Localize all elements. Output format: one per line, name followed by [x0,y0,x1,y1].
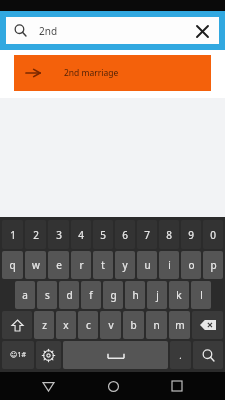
button[interactable]: l [191,281,211,309]
button[interactable]: Back [31,372,65,400]
button[interactable]: 9 [181,220,201,249]
button[interactable]: Space [63,341,168,369]
button[interactable]: 8 [159,220,179,249]
staticText: f [89,288,93,302]
button[interactable]: Home [96,372,130,400]
staticText: y [122,258,128,272]
button[interactable]: 2nd [6,17,219,44]
button[interactable]: g [103,281,123,309]
button[interactable]: f [81,281,101,309]
staticText: i [168,258,171,272]
button[interactable]: 7 [137,220,157,249]
staticText: 9 [188,228,194,242]
staticText: ☺1# [10,350,26,360]
staticText: 3 [56,228,62,242]
button[interactable]: u [137,251,157,279]
staticText: d [66,288,73,302]
button[interactable]: x [56,311,76,339]
staticText: g [110,288,117,302]
staticText: r [79,258,84,272]
button[interactable]: b [123,311,144,339]
staticText: h [132,288,139,302]
staticText: n [153,318,160,332]
button[interactable]: Clear search [193,22,211,40]
button[interactable]: 2nd marriage [14,55,211,91]
staticText: 2nd [39,24,58,38]
button[interactable]: r [71,251,91,279]
button[interactable]: e [48,251,69,279]
button[interactable]: n [146,311,167,339]
staticText: w [32,258,40,272]
staticText: l [200,288,203,302]
button[interactable]: y [115,251,135,279]
button[interactable]: s [37,281,57,309]
staticText: u [144,258,151,272]
button[interactable]: h [125,281,145,309]
staticText: 0 [210,228,216,242]
staticText: 1 [10,228,16,242]
button[interactable]: Settings [36,341,61,369]
button[interactable]: Recent apps [160,372,194,400]
button[interactable]: m [169,311,190,339]
staticText: z [42,318,47,332]
button[interactable]: q [2,251,23,279]
button[interactable]: ☺1# [2,341,34,369]
staticText: 5 [100,228,106,242]
staticText: q [9,258,16,272]
button[interactable]: i [159,251,179,279]
button[interactable]: a [15,281,35,309]
button[interactable]: 2 [25,220,46,249]
staticText: s [45,288,50,302]
button[interactable]: . [170,341,191,369]
button[interactable]: t [93,251,113,279]
button[interactable]: 5 [93,220,113,249]
staticText: x [63,318,69,332]
button[interactable]: 6 [115,220,135,249]
staticText: . [179,349,182,361]
staticText: 6 [122,228,128,242]
staticText: p [210,258,217,272]
button[interactable]: o [181,251,201,279]
button[interactable]: Backspace [192,311,223,339]
button[interactable]: c [78,311,98,339]
staticText: t [101,258,105,272]
button[interactable]: 1 [2,220,23,249]
staticText: 2 [33,228,39,242]
button[interactable]: Shift [2,311,32,339]
staticText: b [130,318,137,332]
button[interactable]: 3 [48,220,69,249]
button[interactable]: w [25,251,46,279]
staticText: 2nd marriage [64,67,119,79]
staticText: k [176,288,182,302]
button[interactable]: j [147,281,167,309]
staticText: c [86,318,91,332]
staticText: m [175,318,185,332]
staticText: 8 [166,228,172,242]
staticText: 7 [144,228,150,242]
button[interactable]: 4 [71,220,91,249]
staticText: e [56,258,62,272]
button[interactable]: 0 [203,220,223,249]
button[interactable]: Search [193,341,223,369]
staticText: j [156,288,159,302]
button[interactable]: k [169,281,189,309]
button[interactable]: v [100,311,121,339]
staticText: o [188,258,195,272]
staticText: v [108,318,114,332]
button[interactable]: p [203,251,223,279]
staticText: 4 [78,228,84,242]
button[interactable]: z [34,311,54,339]
button[interactable]: d [59,281,79,309]
staticText: a [22,288,28,302]
